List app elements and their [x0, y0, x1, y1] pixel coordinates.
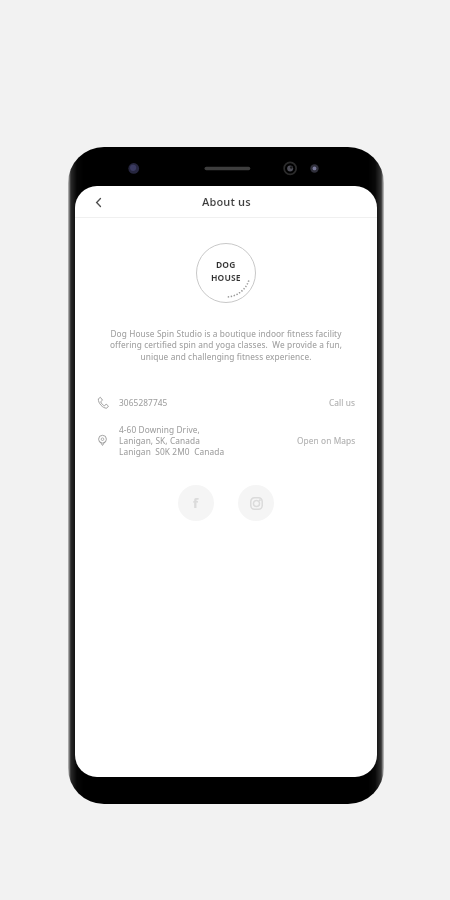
staticText: Dog House Spin Studio is a boutique indo…	[95, 328, 357, 363]
button[interactable]: 4-60 Downing Drive,	[75, 422, 377, 459]
staticText: Open on Maps	[297, 435, 356, 446]
staticText: 3065287745	[119, 397, 168, 408]
staticText: Lanigan S0K 2M0 Canada	[119, 446, 225, 457]
staticText: About us	[202, 194, 251, 209]
button[interactable]: Back	[87, 191, 109, 213]
staticText: Call us	[329, 397, 356, 408]
staticText: DOG	[216, 259, 236, 271]
button[interactable]: Facebook	[178, 485, 214, 521]
button[interactable]: 3065287745	[75, 394, 377, 411]
staticText: HOUSE	[211, 272, 241, 284]
button[interactable]: Instagram	[238, 485, 274, 521]
staticText: f	[193, 494, 199, 512]
staticText: 4-60 Downing Drive,	[119, 424, 200, 435]
staticText: Lanigan, SK, Canada	[119, 435, 200, 446]
